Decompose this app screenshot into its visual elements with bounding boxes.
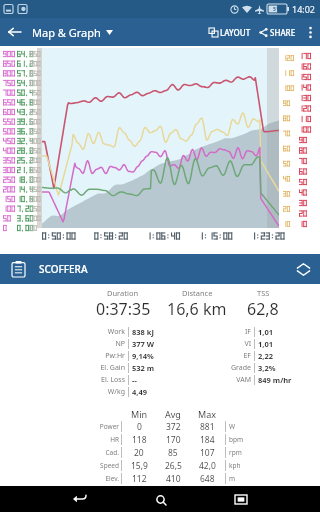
staticText: kph [229, 461, 241, 470]
staticText: Min [131, 408, 148, 420]
staticText: 16,6 km [167, 298, 227, 320]
staticText: Avg [165, 408, 181, 420]
button[interactable]: Expand section [288, 254, 318, 284]
staticText: El. Loss [78, 375, 125, 385]
staticText: 26,5 [165, 460, 182, 472]
staticText: 410 [166, 473, 181, 485]
button[interactable]: Recent apps [224, 486, 258, 512]
staticText: 377 W [132, 339, 182, 349]
staticText: 62,8 [247, 298, 279, 320]
staticText: 1,01 [258, 339, 312, 349]
staticText: 0:37:35 [96, 298, 151, 320]
staticText: W [229, 422, 236, 431]
staticText: 3,2% [258, 363, 312, 373]
staticText: Distance [182, 288, 213, 298]
button[interactable]: Back [62, 486, 96, 512]
staticText: 648 [200, 473, 215, 485]
staticText: IF [200, 327, 251, 337]
staticText: LAYOUT [220, 27, 251, 38]
staticText: SCOFFERA [39, 262, 88, 276]
staticText: Grade [200, 363, 251, 373]
staticText: 85 [168, 447, 178, 459]
staticText: 1,01 [258, 327, 312, 337]
staticText: HR [86, 435, 119, 444]
staticText: 118 [132, 434, 147, 446]
staticText: 15,9 [131, 460, 148, 472]
staticText: Map & Graph [32, 25, 101, 40]
staticText: 4,49 [132, 387, 182, 397]
staticText: 42,0 [199, 460, 216, 472]
button[interactable]: Back [0, 18, 28, 46]
staticText: m [229, 474, 236, 483]
staticText: 112 [132, 473, 147, 485]
staticText: W/kg [78, 387, 125, 397]
staticText: 20 [134, 447, 144, 459]
staticText: Max [198, 408, 216, 420]
staticText: VI [200, 339, 251, 349]
staticText: rpm [229, 448, 242, 457]
staticText: -- [132, 375, 182, 385]
staticText: 14:02 [292, 3, 316, 15]
staticText: Pw:Hr [78, 351, 125, 361]
button[interactable]: SCOFFERA [0, 254, 320, 284]
staticText: Speed [86, 461, 119, 470]
staticText: 849 m/hr [258, 375, 312, 385]
staticText: Power [86, 422, 119, 431]
staticText: Elev. [86, 474, 119, 483]
staticText: 532 m [132, 363, 182, 373]
staticText: bpm [229, 435, 244, 444]
button[interactable]: LAYOUT [205, 18, 255, 46]
staticText: 2,22 [258, 351, 312, 361]
staticText: Work [78, 327, 125, 337]
staticText: 107 [200, 447, 215, 459]
staticText: EF [200, 351, 251, 361]
staticText: 184 [200, 434, 215, 446]
button[interactable]: Map & Graph [28, 25, 117, 40]
staticText: Duration [107, 288, 139, 298]
staticText: 881 [200, 421, 215, 433]
staticText: Cad. [86, 448, 119, 457]
staticText: El. Gain [78, 363, 125, 373]
button[interactable]: More options [300, 18, 320, 46]
staticText: 0 [137, 421, 142, 433]
staticText: 372 [166, 421, 181, 433]
button[interactable]: Home [143, 486, 177, 512]
staticText: 838 kJ [132, 327, 182, 337]
staticText: VAM [200, 375, 251, 385]
staticText: SHARE [270, 27, 296, 38]
staticText: TSS [257, 288, 270, 298]
staticText: 51% [273, 6, 284, 13]
button[interactable]: SHARE [255, 18, 300, 46]
staticText: 9,14% [132, 351, 182, 361]
staticText: 170 [166, 434, 181, 446]
staticText: NP [78, 339, 125, 349]
